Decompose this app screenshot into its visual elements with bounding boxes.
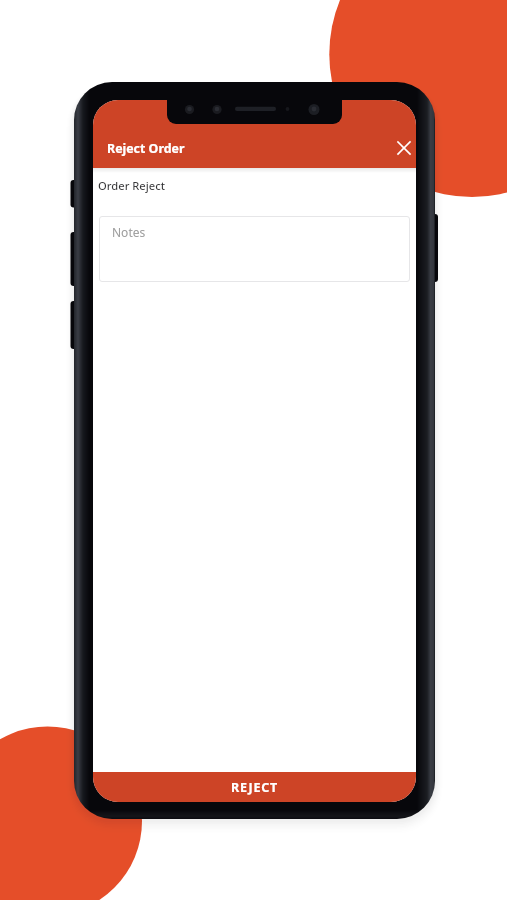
staticText: Notes (112, 224, 146, 240)
staticText: Reject Order (107, 140, 185, 157)
staticText: REJECT (231, 779, 279, 796)
staticText: Order Reject (98, 178, 165, 193)
button[interactable]: REJECT (93, 772, 416, 802)
button[interactable]: Close (391, 135, 416, 161)
button[interactable]: Notes (99, 216, 410, 282)
